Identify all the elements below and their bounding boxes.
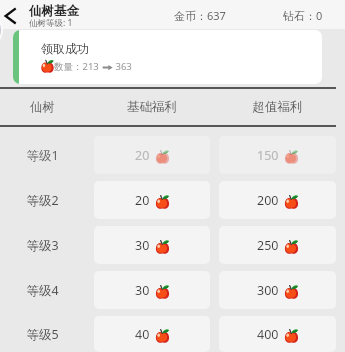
button[interactable]: 30 [94, 271, 210, 309]
staticText: 仙树等级: 1 [29, 17, 73, 29]
staticText: 等级1 [0, 147, 85, 164]
staticText: 250 [257, 237, 279, 254]
staticText: 等级2 [0, 192, 85, 209]
button[interactable]: 150 [219, 136, 336, 174]
staticText: 20 [135, 147, 150, 164]
staticText: 领取成功 [41, 41, 89, 56]
staticText: 数量：213 [54, 60, 102, 73]
button[interactable]: 400 [219, 316, 336, 352]
staticText: 150 [257, 147, 279, 164]
button[interactable]: 300 [219, 271, 336, 309]
staticText: 363 [113, 60, 132, 73]
staticText: 仙树基金 [29, 3, 79, 19]
button[interactable]: Back [0, 3, 20, 29]
staticText: 30 [135, 237, 150, 254]
staticText: 等级5 [0, 326, 85, 343]
button[interactable]: 20 [94, 136, 210, 174]
staticText: 金币：637 [174, 8, 226, 23]
staticText: 仙树 [0, 99, 85, 115]
staticText: 300 [257, 282, 279, 299]
staticText: 200 [257, 192, 279, 209]
staticText: 超值福利 [219, 99, 336, 115]
button[interactable]: 40 [94, 316, 210, 352]
button[interactable]: 30 [94, 226, 210, 264]
button[interactable]: 领取成功 [13, 30, 322, 84]
button[interactable]: 250 [219, 226, 336, 264]
staticText: 20 [135, 192, 150, 209]
staticText: 钻石：0 [283, 8, 323, 23]
staticText: 30 [135, 282, 150, 299]
button[interactable]: 200 [219, 181, 336, 219]
staticText: 400 [257, 326, 279, 343]
staticText: 等级4 [0, 282, 85, 299]
staticText: 40 [135, 326, 150, 343]
staticText: 基础福利 [94, 99, 210, 115]
staticText: 等级3 [0, 237, 85, 254]
button[interactable]: 20 [94, 181, 210, 219]
